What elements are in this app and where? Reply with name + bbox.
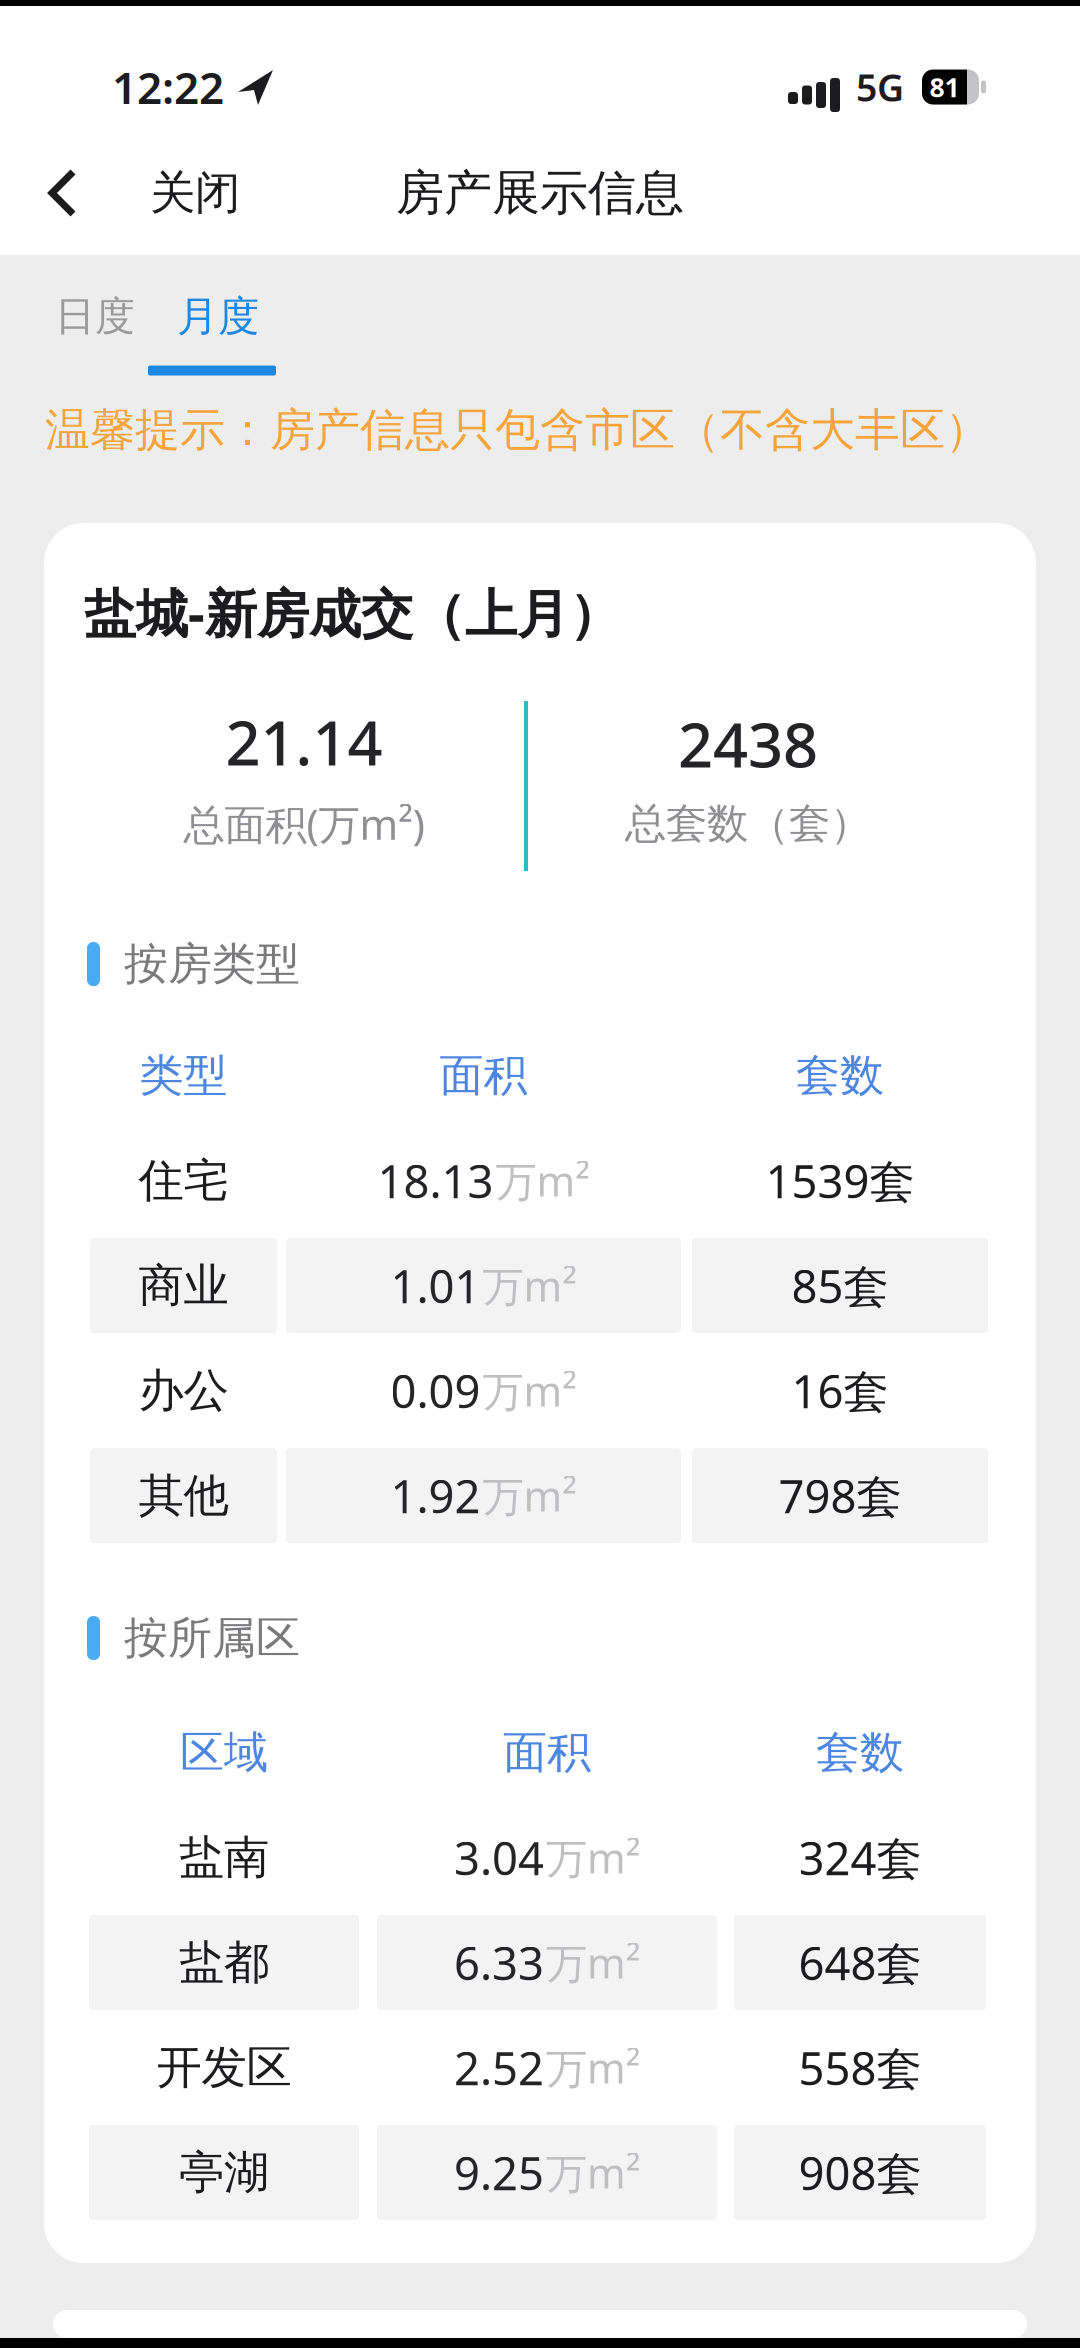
staticText: 万m²: [495, 1153, 589, 1208]
staticText: 万m²: [482, 1363, 576, 1418]
staticText: 关闭: [150, 165, 240, 221]
staticText: 3.04: [454, 1827, 544, 1888]
staticText: 12:22: [112, 58, 224, 116]
staticText: 1.92: [390, 1465, 480, 1526]
staticText: 81: [929, 69, 959, 105]
staticText: 套数: [796, 1048, 884, 1102]
staticText: 0.09: [390, 1360, 480, 1421]
staticText: 648套: [798, 1932, 921, 1993]
staticText: 85套: [791, 1255, 888, 1316]
button[interactable]: 月度: [177, 291, 259, 342]
staticText: 温馨提示：房产信息只包含市区（不含大丰区）: [45, 402, 990, 458]
staticText: 18.13: [377, 1150, 493, 1211]
staticText: 2438: [678, 703, 818, 784]
staticText: 总套数（套）: [625, 798, 871, 849]
staticText: 1539套: [765, 1150, 914, 1211]
staticText: 套数: [816, 1725, 904, 1779]
staticText: 798套: [778, 1465, 901, 1526]
staticText: 万m²: [546, 2145, 640, 2200]
staticText: 总面积(万m²): [183, 796, 424, 851]
staticText: 1.01: [390, 1255, 480, 1316]
staticText: 万m²: [482, 1258, 576, 1313]
button[interactable]: 日度: [55, 292, 135, 341]
staticText: 其他: [138, 1468, 228, 1523]
button[interactable]: 返回: [47, 168, 80, 218]
staticText: 万m²: [482, 1468, 576, 1523]
staticText: 盐城-新房成交（上月）: [84, 578, 621, 647]
staticText: 盐都: [179, 1935, 269, 1990]
staticText: 21.14: [225, 701, 382, 782]
staticText: 类型: [139, 1048, 227, 1102]
staticText: 9.25: [454, 2142, 544, 2203]
staticText: 16套: [791, 1360, 888, 1421]
staticText: 开发区: [156, 2040, 291, 2095]
button[interactable]: 关闭: [150, 165, 240, 221]
staticText: 万m²: [546, 1830, 640, 1885]
staticText: 亭湖: [179, 2145, 269, 2200]
staticText: 办公: [138, 1363, 228, 1418]
staticText: 6.33: [454, 1932, 544, 1993]
staticText: 房产展示信息: [396, 163, 684, 222]
staticText: 万m²: [546, 2040, 640, 2095]
staticText: 万m²: [546, 1935, 640, 1990]
staticText: 2.52: [454, 2037, 544, 2098]
staticText: 面积: [439, 1048, 527, 1102]
staticText: 商业: [138, 1258, 228, 1313]
staticText: 日度: [55, 292, 135, 341]
staticText: 按所属区: [124, 1611, 300, 1665]
staticText: 月度: [177, 291, 259, 342]
staticText: 面积: [503, 1725, 591, 1779]
staticText: 5G: [856, 62, 904, 112]
staticText: 按房类型: [124, 937, 300, 991]
staticText: 住宅: [138, 1153, 228, 1208]
staticText: 558套: [798, 2037, 921, 2098]
staticText: 908套: [798, 2142, 921, 2203]
staticText: 324套: [798, 1827, 921, 1888]
staticText: 区域: [180, 1725, 268, 1779]
staticText: 盐南: [179, 1830, 269, 1885]
